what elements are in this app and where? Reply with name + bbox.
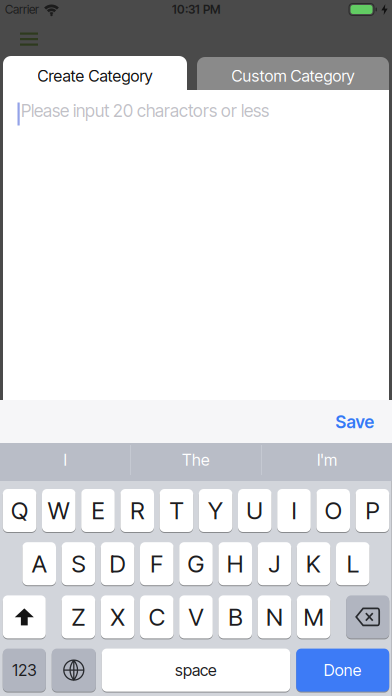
staticText: Z	[71, 603, 85, 631]
button[interactable]: C	[140, 595, 174, 638]
button[interactable]: Done	[296, 649, 389, 692]
button[interactable]: Create Category	[0, 56, 392, 400]
button[interactable]: K	[297, 542, 330, 585]
staticText: N	[266, 603, 283, 631]
staticText: R	[130, 496, 144, 525]
staticText: Q	[11, 496, 28, 525]
staticText: Carrier	[5, 2, 39, 17]
staticText: Done	[324, 661, 362, 680]
staticText: The	[182, 451, 210, 469]
button[interactable]: V	[179, 595, 213, 638]
staticText: T	[169, 496, 183, 525]
button[interactable]	[52, 649, 96, 692]
button[interactable]	[346, 595, 389, 638]
staticText: I'm	[317, 451, 337, 469]
staticText: Y	[208, 496, 223, 525]
button[interactable]: I	[0, 441, 130, 479]
staticText: L	[347, 549, 359, 578]
button[interactable]: E	[81, 489, 115, 532]
button[interactable]: M	[297, 595, 330, 638]
button[interactable]	[16, 28, 42, 50]
staticText: A	[32, 549, 47, 578]
button[interactable]: Y	[199, 489, 232, 532]
staticText: P	[365, 496, 379, 525]
button[interactable]: R	[120, 489, 154, 532]
staticText: S	[71, 549, 85, 578]
button[interactable]: N	[258, 595, 291, 638]
button[interactable]: I'm	[262, 441, 392, 479]
staticText: V	[188, 603, 203, 631]
button[interactable]: 123	[3, 649, 46, 692]
button[interactable]: Q	[3, 489, 36, 532]
staticText: F	[150, 549, 163, 578]
staticText: I	[63, 451, 66, 469]
staticText: O	[325, 496, 342, 525]
staticText: Custom Category	[231, 67, 354, 85]
staticText: space	[175, 661, 217, 680]
button[interactable]: G	[179, 542, 213, 585]
button[interactable]: S	[62, 542, 95, 585]
staticText: G	[187, 549, 204, 578]
staticText: W	[48, 496, 70, 525]
button[interactable]: space	[102, 649, 290, 692]
staticText: 10:31 PM	[172, 2, 220, 17]
button[interactable]: T	[160, 489, 193, 532]
staticText: 123	[12, 661, 36, 680]
button[interactable]: X	[101, 595, 134, 638]
button[interactable]: J	[258, 542, 291, 585]
staticText: H	[227, 549, 244, 578]
button[interactable]: W	[42, 489, 76, 532]
button[interactable]: Custom Category	[0, 56, 392, 400]
button[interactable]: L	[336, 542, 370, 585]
staticText: D	[110, 549, 126, 578]
button[interactable]: Z	[62, 595, 95, 638]
button[interactable]: P	[356, 489, 389, 532]
button[interactable]: U	[238, 489, 272, 532]
button[interactable]: O	[316, 489, 350, 532]
button[interactable]: D	[101, 542, 134, 585]
staticText: J	[268, 549, 280, 578]
staticText: U	[246, 496, 263, 525]
button[interactable]: Save	[0, 400, 392, 443]
staticText: C	[149, 603, 165, 631]
button[interactable]: A	[22, 542, 56, 585]
staticText: M	[304, 603, 324, 631]
staticText: Save	[335, 412, 374, 432]
staticText: K	[306, 549, 321, 578]
button[interactable]: I	[277, 489, 311, 532]
staticText: B	[228, 603, 242, 631]
staticText: Create Category	[37, 67, 152, 85]
staticText: X	[111, 603, 125, 631]
button[interactable]	[3, 595, 46, 638]
staticText: Please input 20 charactors or less	[21, 100, 269, 121]
staticText: E	[91, 496, 104, 525]
button[interactable]: F	[140, 542, 174, 585]
button[interactable]	[0, 56, 392, 400]
staticText: I	[291, 496, 296, 525]
button[interactable]: The	[131, 441, 261, 479]
button[interactable]: B	[218, 595, 252, 638]
button[interactable]: H	[218, 542, 252, 585]
